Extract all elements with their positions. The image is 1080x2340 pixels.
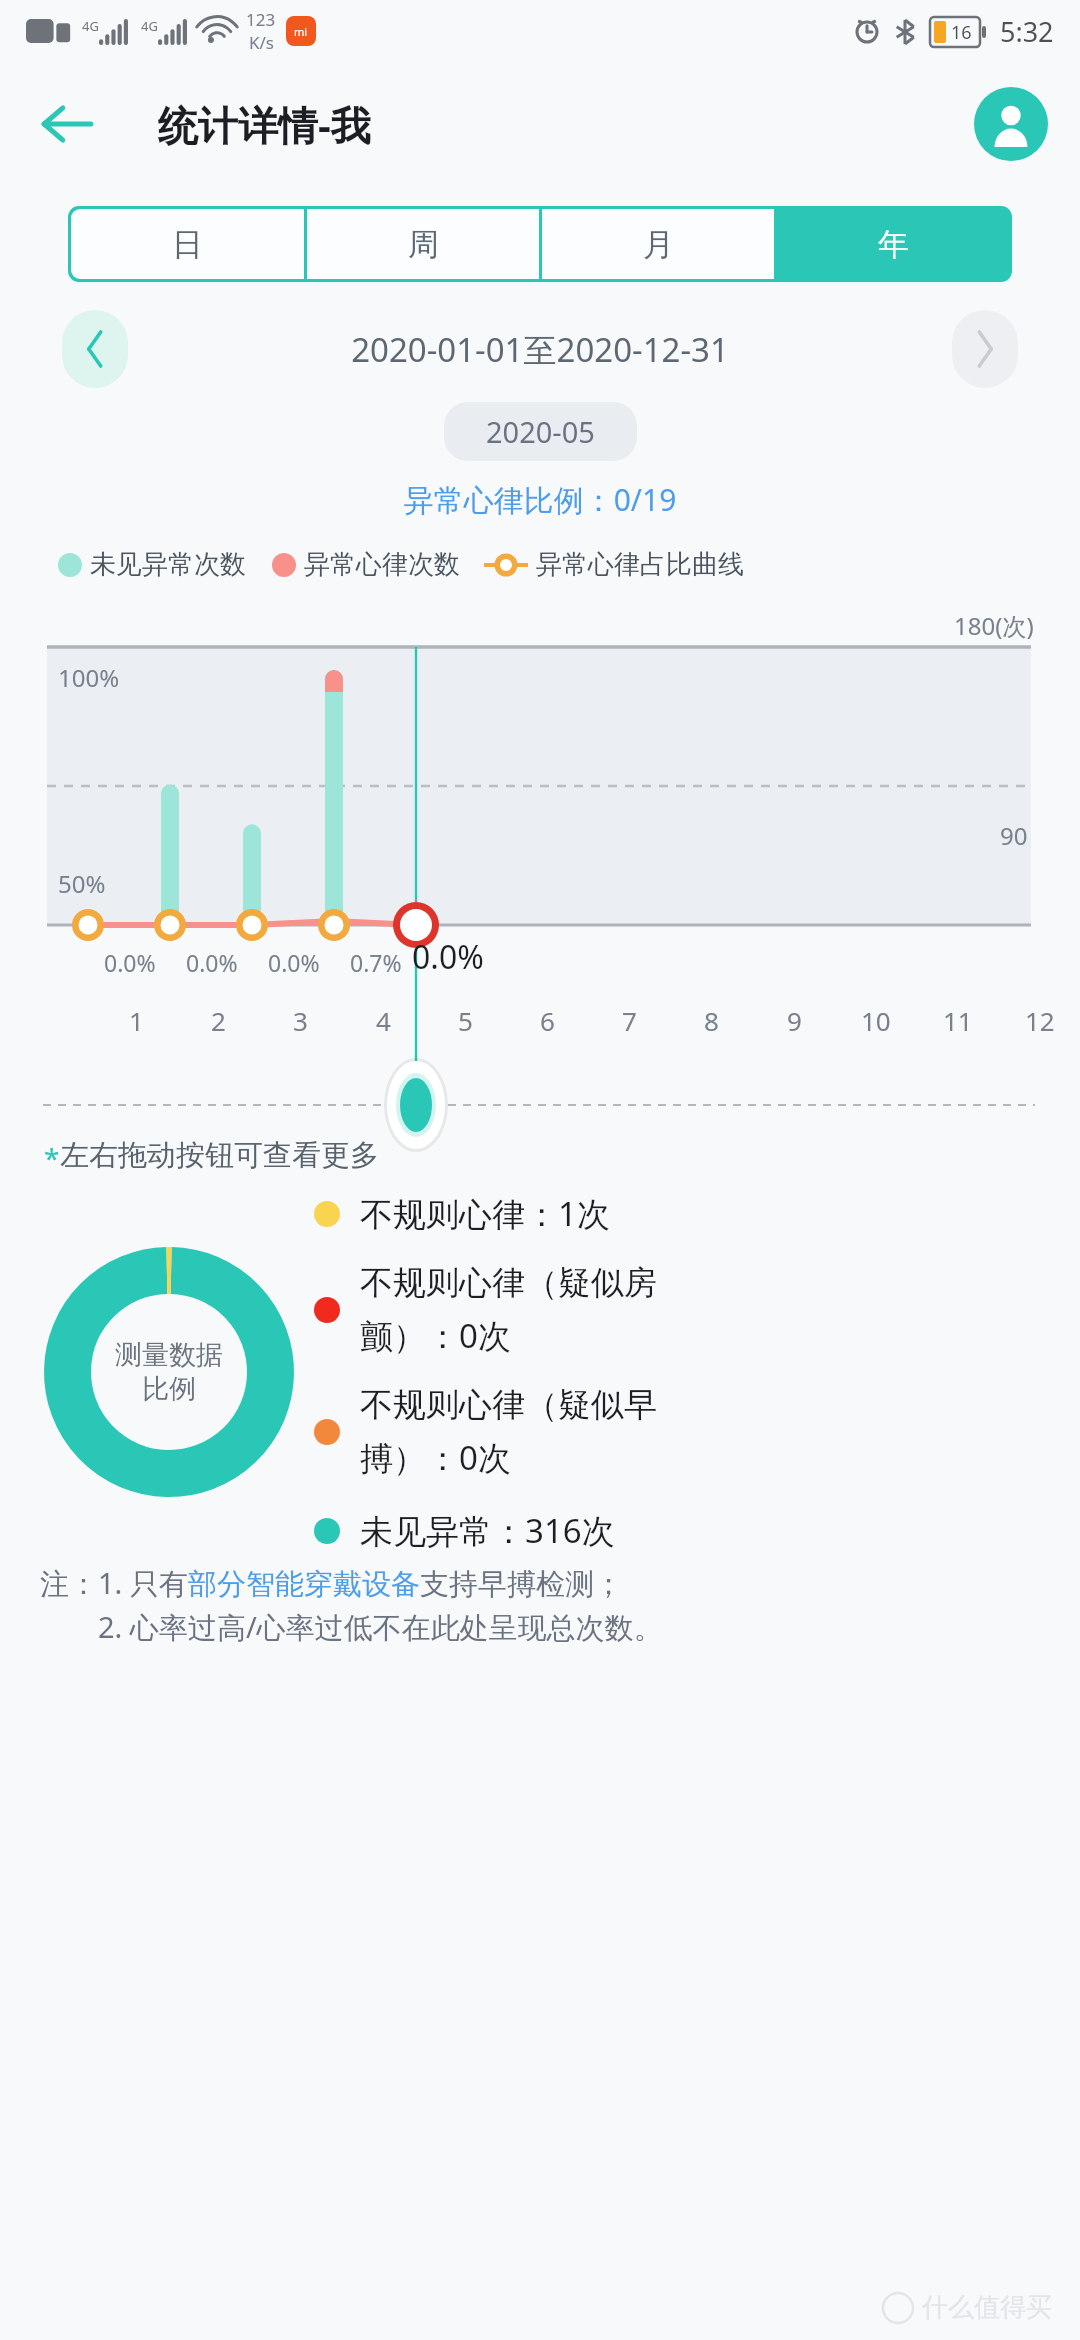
staticText: 0.0% bbox=[186, 947, 238, 978]
button[interactable]: 不规则心律：1次 bbox=[314, 1191, 1054, 1236]
button[interactable]: 个人中心 bbox=[974, 87, 1048, 161]
button[interactable]: 日 bbox=[71, 209, 304, 279]
staticText: 异常心律次数 bbox=[304, 548, 460, 581]
button[interactable]: 周 bbox=[307, 209, 539, 279]
staticText: 90 bbox=[1000, 819, 1028, 852]
staticText: 未见异常次数 bbox=[90, 548, 246, 581]
button[interactable]: 左右拖动查看更多 bbox=[404, 1047, 494, 1121]
staticText: 测量数据 bbox=[115, 1338, 223, 1372]
button[interactable]: 返回 bbox=[30, 87, 104, 161]
staticText: 2. 心率过高/心率过低不在此处呈现总次数。 bbox=[98, 1607, 663, 1647]
staticText: 180(次) bbox=[954, 609, 1034, 642]
staticText: 月 bbox=[643, 225, 674, 264]
button[interactable]: 未见异常：316次 bbox=[314, 1508, 1054, 1553]
staticText: 不规则心律（疑似房 颤）：0次 bbox=[360, 1262, 657, 1358]
staticText: 不规则心律：1次 bbox=[360, 1191, 610, 1236]
staticText: 统计详情-我 bbox=[158, 97, 371, 152]
staticText: 注：1. 只有部分智能穿戴设备支持早搏检测； bbox=[40, 1563, 623, 1603]
staticText: 8 bbox=[704, 1003, 719, 1038]
staticText: 5:32 bbox=[1000, 13, 1054, 50]
button[interactable]: 2020-05 bbox=[444, 402, 637, 461]
staticText: mi bbox=[294, 24, 308, 39]
staticText: 1 bbox=[129, 1003, 144, 1038]
button[interactable]: 月 bbox=[542, 209, 774, 279]
staticText: 4G bbox=[141, 17, 158, 35]
staticText: 0.0% bbox=[104, 947, 156, 978]
staticText: 3 bbox=[293, 1003, 308, 1038]
staticText: 什么值得买 bbox=[922, 2291, 1052, 2324]
staticText: 2020-01-01至2020-12-31 bbox=[128, 327, 952, 372]
staticText: 2 bbox=[211, 1003, 226, 1038]
staticText: 123 bbox=[246, 8, 276, 31]
staticText: 12 bbox=[1025, 1003, 1055, 1038]
staticText: 年 bbox=[878, 225, 909, 264]
staticText: 比例 bbox=[142, 1372, 196, 1406]
staticText: 左右拖动按钮可查看更多 bbox=[60, 1137, 379, 1174]
staticText: 不规则心律（疑似早 搏）：0次 bbox=[360, 1384, 657, 1480]
staticText: 16 bbox=[951, 20, 972, 45]
staticText: 异常心律占比曲线 bbox=[536, 548, 744, 581]
staticText: 未见异常：316次 bbox=[360, 1508, 615, 1553]
staticText: 11 bbox=[943, 1003, 973, 1038]
staticText: 4G bbox=[82, 17, 99, 35]
staticText: 100% bbox=[58, 661, 120, 694]
staticText: 0.0% bbox=[412, 935, 484, 979]
button[interactable]: 上一年 bbox=[62, 310, 128, 388]
button[interactable]: 不规则心律（疑似房 颤）：0次 bbox=[314, 1262, 1054, 1358]
button[interactable]: 年 bbox=[777, 209, 1009, 279]
staticText: 4 bbox=[376, 1003, 391, 1038]
staticText: 日 bbox=[172, 225, 203, 264]
staticText: 0.7% bbox=[350, 947, 402, 978]
staticText: 2020-05 bbox=[486, 412, 595, 451]
button[interactable]: 不规则心律（疑似早 搏）：0次 bbox=[314, 1384, 1054, 1480]
staticText: 周 bbox=[408, 225, 439, 264]
staticText: K/s bbox=[249, 31, 274, 54]
staticText: * bbox=[44, 1139, 60, 1177]
staticText: 异常心律比例：0/19 bbox=[0, 479, 1080, 520]
staticText: 5 bbox=[458, 1003, 473, 1038]
staticText: 10 bbox=[861, 1003, 891, 1038]
staticText: 6 bbox=[540, 1003, 555, 1038]
staticText: 50% bbox=[58, 867, 106, 900]
staticText: 9 bbox=[787, 1003, 802, 1038]
staticText: 0.0% bbox=[268, 947, 320, 978]
staticText: 7 bbox=[622, 1003, 637, 1038]
button[interactable]: 下一年 bbox=[952, 310, 1018, 388]
